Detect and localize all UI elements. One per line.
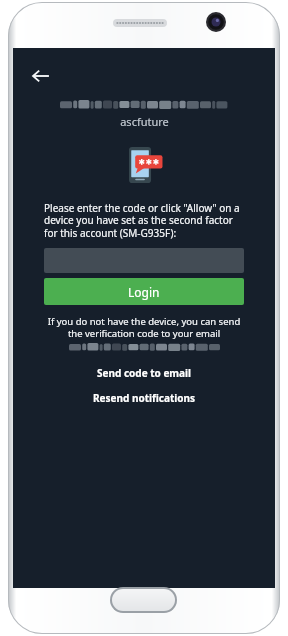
button[interactable]: Send code to email: [44, 365, 244, 381]
staticText: Login: [128, 284, 160, 300]
staticText: Send code to email: [97, 366, 192, 380]
staticText: Resend notifications: [93, 391, 196, 405]
button[interactable]: Login: [44, 278, 244, 305]
staticText: ascfuture: [120, 114, 169, 129]
staticText: Please enter the code or click "Allow" o…: [44, 201, 244, 240]
button[interactable]: Resend notifications: [44, 390, 244, 406]
button[interactable]: Back: [21, 56, 61, 96]
staticText: If you do not have the device, you can s…: [42, 315, 246, 340]
